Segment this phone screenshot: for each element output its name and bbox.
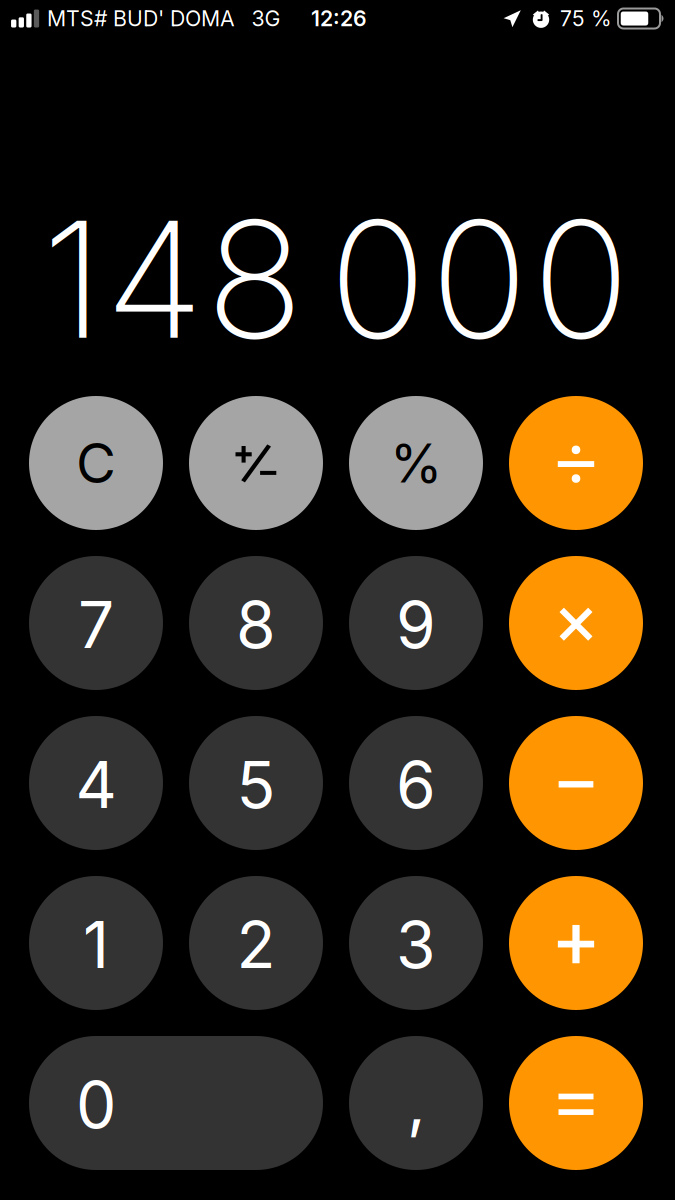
button[interactable]: 3 <box>349 876 483 1010</box>
staticText: 3 <box>396 906 436 983</box>
button[interactable]: 1 <box>29 876 163 1010</box>
staticText: 8 <box>236 586 276 663</box>
button[interactable]: Divide <box>509 396 643 530</box>
button[interactable]: 9 <box>349 556 483 690</box>
button[interactable]: Percent <box>349 396 483 530</box>
staticText: 5 <box>236 746 275 823</box>
button[interactable]: Decimal separator <box>349 1036 483 1170</box>
staticText: C <box>76 430 116 496</box>
staticText: 12:26 <box>311 6 367 31</box>
button[interactable]: 4 <box>29 716 163 850</box>
staticText: 0 <box>76 1066 116 1143</box>
button[interactable]: Minus <box>509 716 643 850</box>
staticText: 4 <box>75 746 116 823</box>
staticText: 6 <box>396 746 436 823</box>
button[interactable]: Multiply <box>509 556 643 690</box>
button[interactable]: 5 <box>189 716 323 850</box>
button[interactable]: 0 <box>29 1036 323 1170</box>
button[interactable]: Clear <box>29 396 163 530</box>
staticText: 75 % <box>560 6 612 31</box>
staticText: 3G <box>251 6 280 31</box>
button[interactable]: 6 <box>349 716 483 850</box>
staticText: 148 <box>42 181 303 377</box>
button[interactable]: Equals <box>509 1036 643 1170</box>
staticText: 1 <box>83 906 109 983</box>
button[interactable]: Plus minus <box>189 396 323 530</box>
button[interactable]: Plus <box>509 876 643 1010</box>
button[interactable]: 2 <box>189 876 323 1010</box>
staticText: MTS# BUD' DOMA <box>47 6 235 31</box>
staticText: 7 <box>78 586 114 663</box>
button[interactable]: 7 <box>29 556 163 690</box>
staticText: 2 <box>236 906 275 983</box>
staticText: 9 <box>396 586 436 663</box>
staticText: 000 <box>329 181 629 377</box>
staticText: % <box>390 431 442 495</box>
staticText: , <box>407 1063 426 1142</box>
button[interactable]: 8 <box>189 556 323 690</box>
